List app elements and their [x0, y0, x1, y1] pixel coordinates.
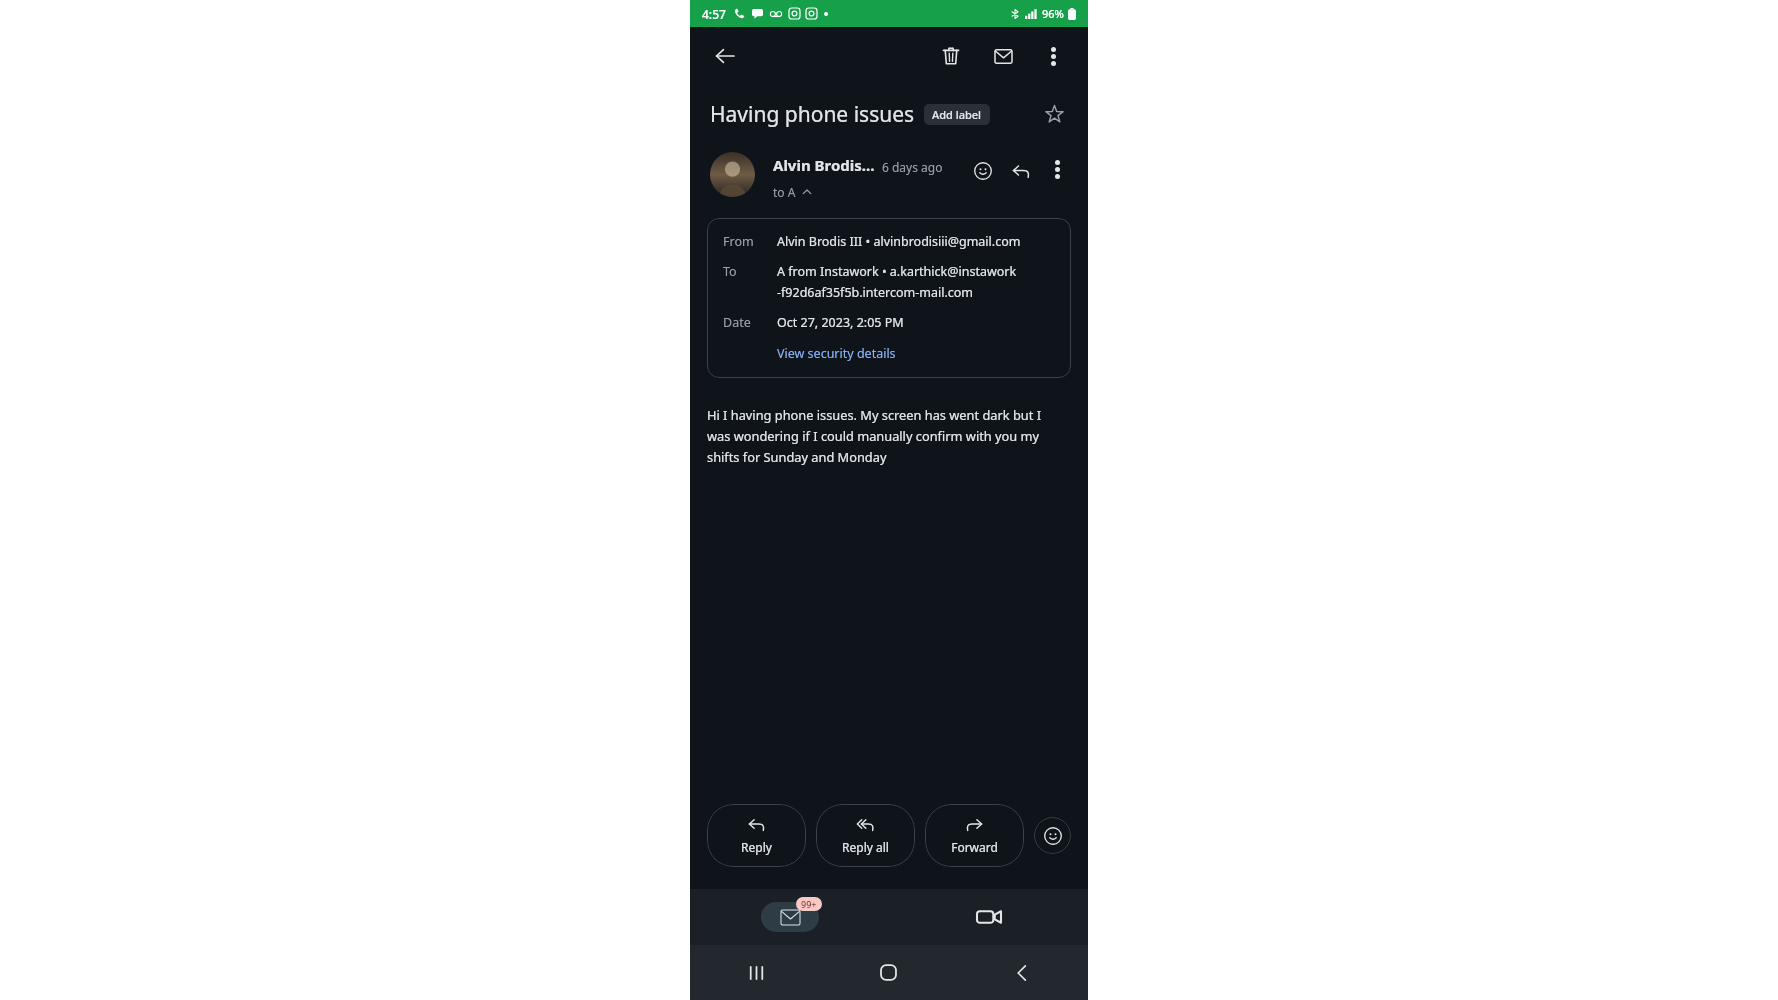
staticText: Oct 27, 2023, 2:05 PM — [777, 314, 904, 331]
button[interactable]: Meet — [889, 889, 1088, 945]
button[interactable]: Back — [955, 945, 1088, 1000]
button[interactable]: Add reaction — [1034, 817, 1071, 854]
staticText: Alvin Brodis… — [773, 155, 875, 175]
staticText: -f92d6af35f5b.intercom-mail.com — [777, 284, 974, 301]
staticText: Hi I having phone issues. My screen has … — [707, 406, 1041, 423]
button[interactable]: Add reaction — [964, 152, 1002, 190]
button[interactable]: Delete — [930, 35, 972, 77]
button[interactable]: Sender photo — [710, 152, 755, 197]
staticText: to A — [773, 184, 796, 200]
button[interactable]: More options — [1040, 152, 1074, 186]
staticText: Reply — [741, 839, 772, 855]
staticText: 6 days ago — [882, 159, 943, 175]
staticText: Forward — [951, 839, 998, 855]
staticText: 4:57 — [702, 6, 726, 22]
button[interactable]: View security details — [777, 345, 896, 362]
staticText: To — [723, 263, 737, 280]
staticText: View security details — [777, 345, 896, 362]
button[interactable]: Forward — [925, 804, 1024, 867]
staticText: A from Instawork • a.karthick@instawork — [777, 263, 1017, 280]
button[interactable]: Mark unread — [982, 35, 1024, 77]
button[interactable]: Reply — [1002, 152, 1040, 190]
staticText: was wondering if I could manually confir… — [707, 427, 1040, 444]
button[interactable]: Back — [704, 35, 746, 77]
staticText: shifts for Sunday and Monday — [707, 448, 887, 465]
staticText: From — [723, 233, 754, 250]
button[interactable]: Mail, 99+ unread — [690, 889, 889, 945]
button[interactable]: to A — [773, 184, 812, 200]
staticText: 96% — [1042, 6, 1064, 21]
button[interactable]: More options — [1032, 35, 1074, 77]
staticText: Reply all — [842, 839, 889, 855]
staticText: Date — [723, 314, 751, 331]
button[interactable]: From — [707, 218, 1071, 378]
staticText: Having phone issues — [710, 100, 915, 129]
staticText: Alvin Brodis III • alvinbrodisiii@gmail.… — [777, 233, 1021, 250]
staticText: Add label — [932, 107, 982, 122]
button[interactable]: Add label — [924, 104, 990, 125]
button[interactable]: Reply — [707, 804, 806, 867]
button[interactable]: Recents — [690, 945, 822, 1000]
button[interactable]: Home — [822, 945, 955, 1000]
button[interactable]: Star — [1034, 94, 1074, 134]
staticText: 99+ — [801, 898, 817, 910]
button[interactable]: Reply all — [816, 804, 915, 867]
